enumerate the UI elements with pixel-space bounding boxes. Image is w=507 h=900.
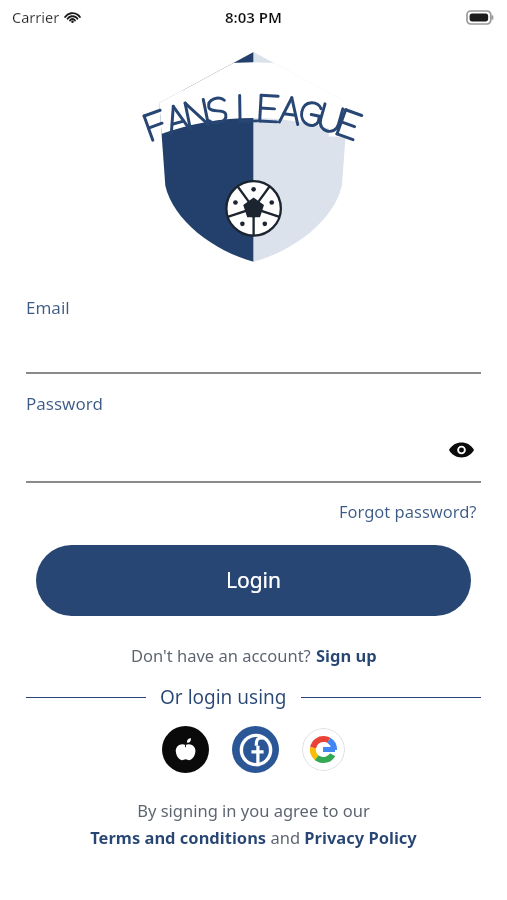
- staticText: 8:03 PM: [225, 7, 282, 27]
- staticText: Email: [26, 296, 70, 319]
- button[interactable]: Sign in with Apple: [162, 726, 209, 773]
- button[interactable]: Forgot password?: [335, 496, 481, 526]
- button[interactable]: Sign in with Facebook: [232, 726, 279, 773]
- staticText: Password: [26, 392, 103, 415]
- staticText: Sign up: [316, 644, 377, 666]
- staticText: Don't have an account?: [131, 644, 316, 666]
- button[interactable]: Login: [36, 545, 471, 616]
- button[interactable]: Sign up: [316, 644, 377, 666]
- staticText: Or login using: [160, 684, 287, 710]
- staticText: Login: [226, 566, 282, 595]
- staticText: Forgot password?: [339, 500, 477, 522]
- staticText: By signing in you agree to our: [26, 799, 481, 821]
- button[interactable]: Terms and conditions and Privacy Policy: [26, 826, 481, 848]
- button[interactable]: Sign in with Google: [302, 728, 345, 771]
- staticText: Carrier: [12, 7, 60, 27]
- button[interactable]: Show password: [441, 430, 481, 470]
